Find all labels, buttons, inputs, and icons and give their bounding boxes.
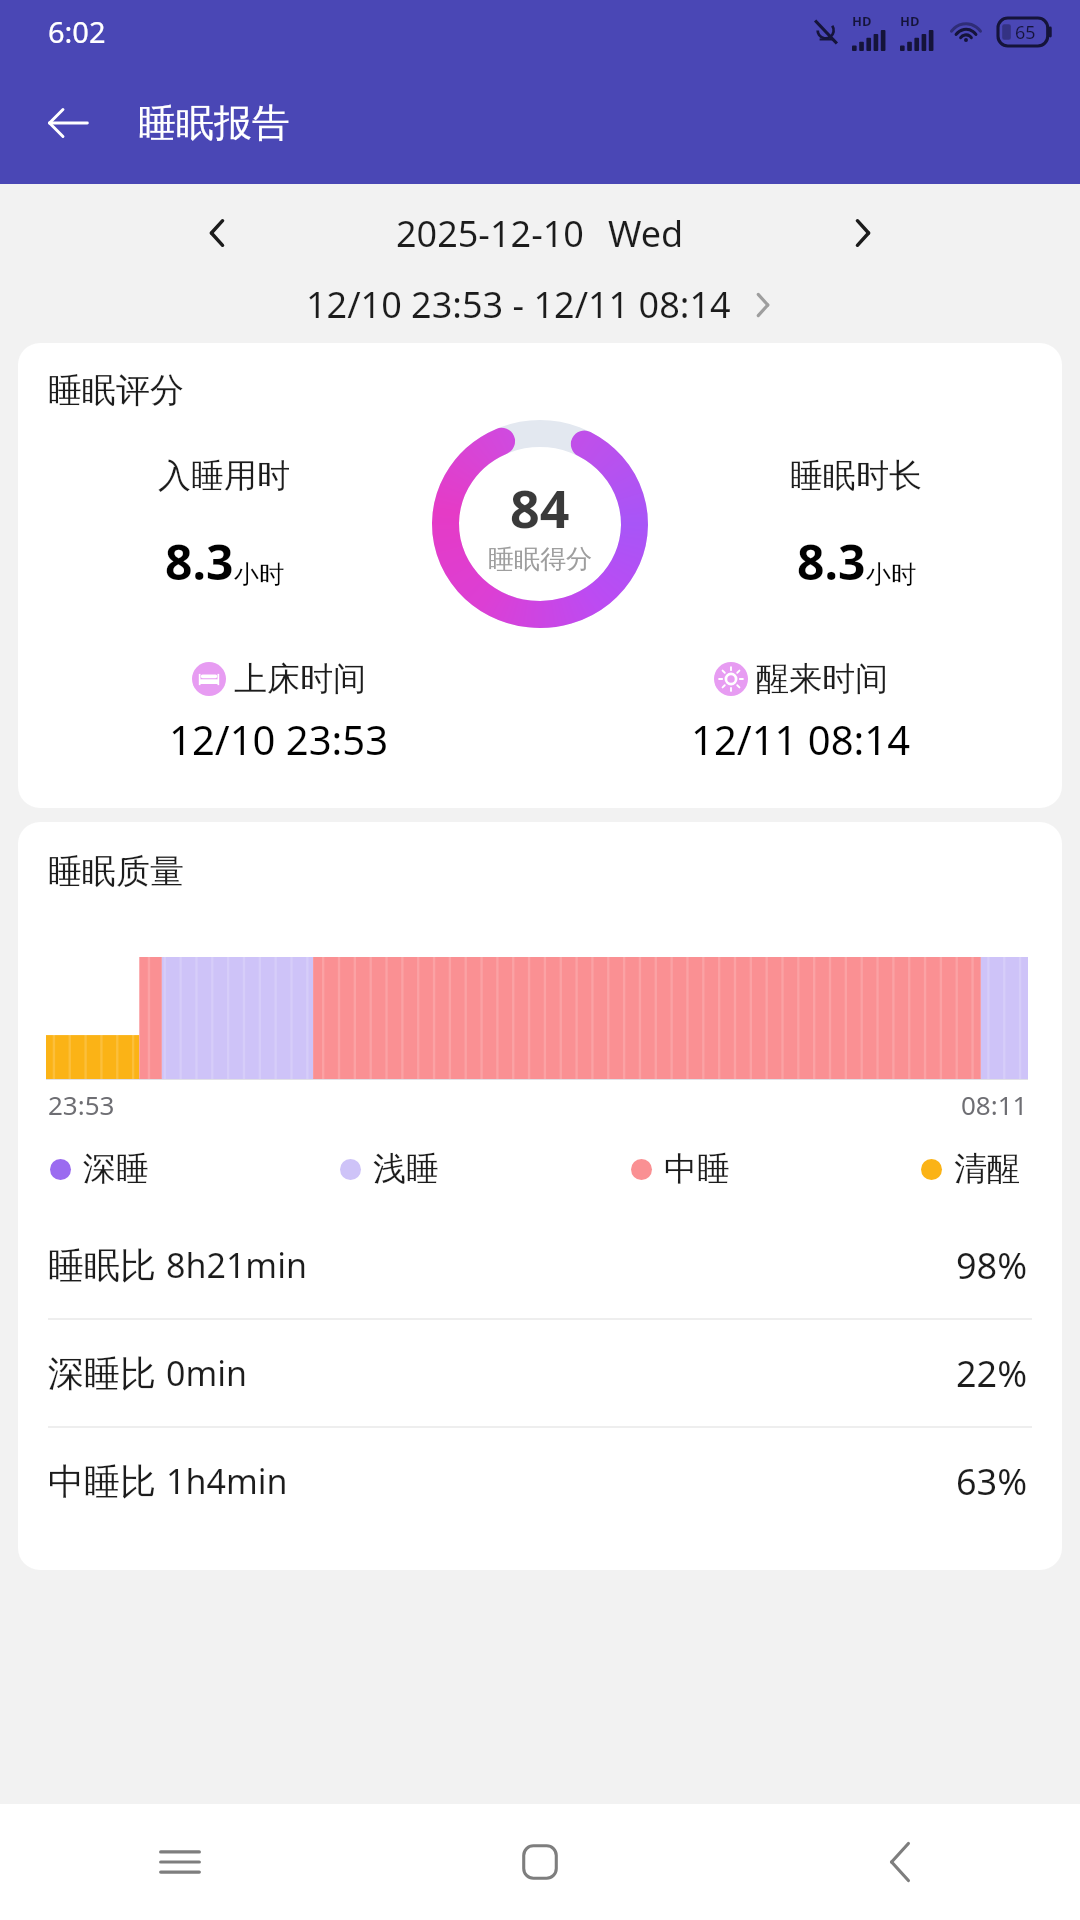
staticText: 2025-12-10 bbox=[396, 209, 584, 258]
staticText: 睡眠质量 bbox=[48, 850, 184, 893]
staticText: 中睡比 bbox=[48, 1459, 156, 1504]
staticText: 8.3 bbox=[165, 529, 234, 594]
staticText: 深睡比 bbox=[48, 1351, 156, 1396]
staticText: 65 bbox=[1015, 20, 1036, 45]
staticText: 小时 bbox=[866, 559, 916, 590]
button[interactable]: Next day bbox=[834, 204, 892, 262]
button[interactable]: Back bbox=[32, 87, 104, 159]
button[interactable]: 醒来时间 bbox=[540, 658, 1062, 766]
staticText: 清醒 bbox=[954, 1148, 1020, 1190]
button[interactable]: 睡眠比 bbox=[18, 1212, 1062, 1318]
button[interactable]: 睡眠评分 bbox=[18, 343, 1062, 808]
staticText: 睡眠评分 bbox=[48, 369, 184, 412]
staticText: 6:02 bbox=[48, 12, 106, 51]
staticText: 63% bbox=[956, 1457, 1028, 1506]
button[interactable]: 上床时间 bbox=[18, 658, 540, 766]
staticText: 中睡 bbox=[664, 1148, 730, 1190]
staticText: 23:53 bbox=[48, 1087, 115, 1122]
staticText: HD bbox=[900, 12, 920, 30]
button[interactable]: Home bbox=[360, 1804, 720, 1920]
staticText: 睡眠时长 bbox=[790, 455, 922, 497]
button[interactable]: 中睡比 bbox=[18, 1428, 1062, 1534]
staticText: 睡眠比 bbox=[48, 1243, 156, 1288]
staticText: Wed bbox=[608, 209, 684, 258]
staticText: 8.3 bbox=[797, 529, 866, 594]
button[interactable]: 浅睡 bbox=[340, 1148, 439, 1190]
button[interactable]: 中睡 bbox=[631, 1148, 730, 1190]
staticText: 睡眠报告 bbox=[138, 99, 290, 147]
staticText: 浅睡 bbox=[373, 1148, 439, 1190]
button[interactable]: 2025-12-10 bbox=[396, 209, 684, 258]
button[interactable]: Recent apps bbox=[0, 1804, 360, 1920]
button[interactable]: Back bbox=[720, 1804, 1080, 1920]
staticText: 醒来时间 bbox=[756, 658, 888, 700]
staticText: 84 bbox=[510, 472, 570, 543]
staticText: 1h4min bbox=[166, 1458, 288, 1504]
staticText: 深睡 bbox=[83, 1148, 149, 1190]
staticText: 12/10 23:53 - 12/11 08:14 bbox=[306, 280, 731, 329]
staticText: 98% bbox=[956, 1241, 1028, 1290]
staticText: 8h21min bbox=[166, 1242, 307, 1288]
staticText: 12/10 23:53 bbox=[169, 712, 389, 766]
button[interactable]: Previous day bbox=[188, 204, 246, 262]
staticText: 0min bbox=[166, 1350, 248, 1396]
button[interactable]: 睡眠质量 bbox=[18, 822, 1062, 1570]
staticText: 12/11 08:14 bbox=[691, 712, 911, 766]
staticText: 22% bbox=[956, 1349, 1028, 1398]
staticText: 08:11 bbox=[961, 1087, 1028, 1122]
button[interactable]: 清醒 bbox=[921, 1148, 1020, 1190]
staticText: 上床时间 bbox=[234, 658, 366, 700]
staticText: 入睡用时 bbox=[158, 455, 290, 497]
button[interactable]: 12/10 23:53 - 12/11 08:14 bbox=[0, 280, 1080, 329]
staticText: 小时 bbox=[234, 559, 284, 590]
staticText: HD bbox=[852, 12, 872, 30]
button[interactable]: 深睡 bbox=[50, 1148, 149, 1190]
button[interactable]: 深睡比 bbox=[18, 1320, 1062, 1426]
staticText: 睡眠得分 bbox=[488, 543, 592, 576]
